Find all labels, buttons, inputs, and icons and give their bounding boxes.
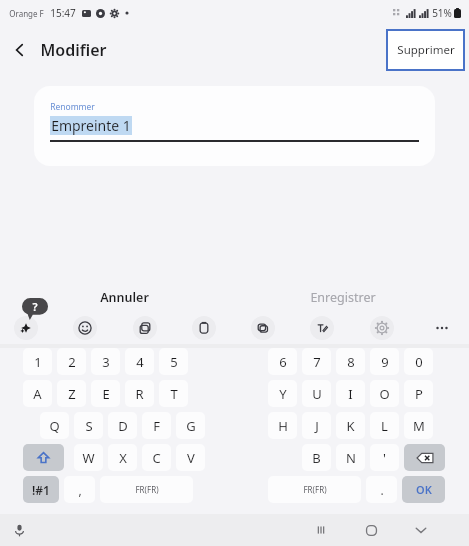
button[interactable]: R <box>125 380 154 407</box>
button[interactable]: OK <box>402 476 445 503</box>
button[interactable]: 3 <box>91 348 120 375</box>
button[interactable]: 2 <box>57 348 86 375</box>
button[interactable]: D <box>108 412 137 439</box>
staticText: D <box>118 417 128 435</box>
staticText: !#1 <box>32 482 50 498</box>
staticText: S <box>85 417 93 435</box>
button[interactable]: , <box>64 476 95 503</box>
button[interactable]: Stickers <box>251 316 275 340</box>
button[interactable]: FR(FR) <box>268 476 361 503</box>
staticText: M <box>413 417 425 435</box>
button[interactable]: 1 <box>23 348 52 375</box>
button[interactable]: Settings <box>370 316 394 340</box>
button[interactable]: 4 <box>125 348 154 375</box>
button[interactable]: Back <box>0 30 40 70</box>
staticText: G <box>186 417 196 435</box>
button[interactable]: S <box>74 412 103 439</box>
button[interactable]: Translate <box>133 316 157 340</box>
staticText: 51% <box>432 6 452 20</box>
staticText: OK <box>416 482 432 497</box>
button[interactable]: Z <box>57 380 86 407</box>
staticText: 4 <box>136 353 144 371</box>
button[interactable]: C <box>142 444 171 471</box>
button[interactable]: !#1 <box>23 476 59 503</box>
button[interactable]: 6 <box>268 348 297 375</box>
button[interactable]: A <box>23 380 52 407</box>
button[interactable]: Clipboard <box>192 316 216 340</box>
button[interactable]: Voice input <box>4 515 34 545</box>
staticText: W <box>82 449 95 467</box>
button[interactable]: Hide keyboard <box>403 514 439 546</box>
button[interactable]: Y <box>268 380 297 407</box>
button[interactable]: . <box>366 476 397 503</box>
staticText: 9 <box>381 353 389 371</box>
button[interactable]: Supprimer <box>386 29 465 71</box>
button[interactable]: Home <box>353 514 389 546</box>
button[interactable]: K <box>336 412 365 439</box>
staticText: I <box>348 385 353 403</box>
staticText: Empreinte 1 <box>51 116 131 135</box>
button[interactable]: Backspace <box>404 444 445 471</box>
button[interactable]: E <box>91 380 120 407</box>
staticText: P <box>415 385 423 403</box>
button[interactable]: T <box>159 380 188 407</box>
button[interactable]: FR(FR) <box>100 476 193 503</box>
button[interactable]: U <box>302 380 331 407</box>
button[interactable]: L <box>370 412 399 439</box>
button[interactable]: V <box>176 444 205 471</box>
button[interactable]: M <box>404 412 433 439</box>
staticText: Modifier <box>40 39 107 61</box>
button[interactable]: Recents <box>303 514 339 546</box>
button[interactable]: O <box>370 380 399 407</box>
staticText: FR(FR) <box>135 484 159 495</box>
button[interactable]: 7 <box>302 348 331 375</box>
staticText: Y <box>279 385 287 403</box>
button[interactable]: Handwriting <box>310 316 334 340</box>
staticText: ' <box>383 449 386 467</box>
staticText: 1 <box>34 353 42 371</box>
button[interactable]: ' <box>370 444 399 471</box>
button[interactable]: More options <box>429 315 455 341</box>
button[interactable]: 0 <box>404 348 433 375</box>
staticText: ? <box>32 299 38 314</box>
button[interactable]: X <box>108 444 137 471</box>
button[interactable]: 9 <box>370 348 399 375</box>
staticText: 15:47 <box>50 6 76 20</box>
button[interactable]: N <box>336 444 365 471</box>
button[interactable]: I <box>336 380 365 407</box>
staticText: C <box>152 449 161 467</box>
button[interactable]: 8 <box>336 348 365 375</box>
button[interactable]: Q <box>40 412 69 439</box>
staticText: 6 <box>279 353 287 371</box>
button[interactable]: H <box>268 412 297 439</box>
button[interactable]: J <box>302 412 331 439</box>
button[interactable]: Annuler <box>100 289 149 306</box>
staticText: A <box>33 385 42 403</box>
staticText: U <box>312 385 322 403</box>
button[interactable]: F <box>142 412 171 439</box>
button[interactable]: B <box>302 444 331 471</box>
button[interactable]: G <box>176 412 205 439</box>
staticText: Orange F <box>9 8 44 19</box>
staticText: Supprimer <box>397 42 455 58</box>
button[interactable]: P <box>404 380 433 407</box>
button[interactable]: W <box>74 444 103 471</box>
button[interactable]: Shift <box>23 444 64 471</box>
button[interactable]: Assist <box>14 316 38 340</box>
staticText: 3 <box>102 353 110 371</box>
staticText: 7 <box>313 353 321 371</box>
staticText: K <box>346 417 355 435</box>
staticText: FR(FR) <box>303 484 327 495</box>
staticText: Renommer <box>50 101 95 113</box>
staticText: 5 <box>170 353 178 371</box>
button[interactable]: Empreinte 1 <box>51 116 131 135</box>
button[interactable]: 5 <box>159 348 188 375</box>
staticText: L <box>381 417 388 435</box>
staticText: B <box>312 449 321 467</box>
staticText: E <box>102 385 110 403</box>
staticText: , <box>78 482 82 498</box>
staticText: O <box>379 385 390 403</box>
staticText: N <box>346 449 356 467</box>
button[interactable]: Emoji <box>73 316 97 340</box>
button[interactable]: Enregistrer <box>310 289 376 306</box>
